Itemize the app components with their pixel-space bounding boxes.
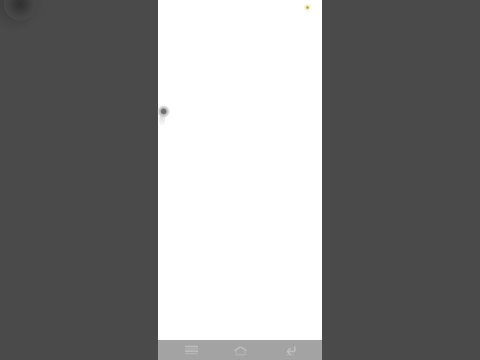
button[interactable]: Recent apps [174, 340, 208, 360]
button[interactable]: Home [223, 340, 257, 360]
button[interactable]: Back [273, 340, 307, 360]
